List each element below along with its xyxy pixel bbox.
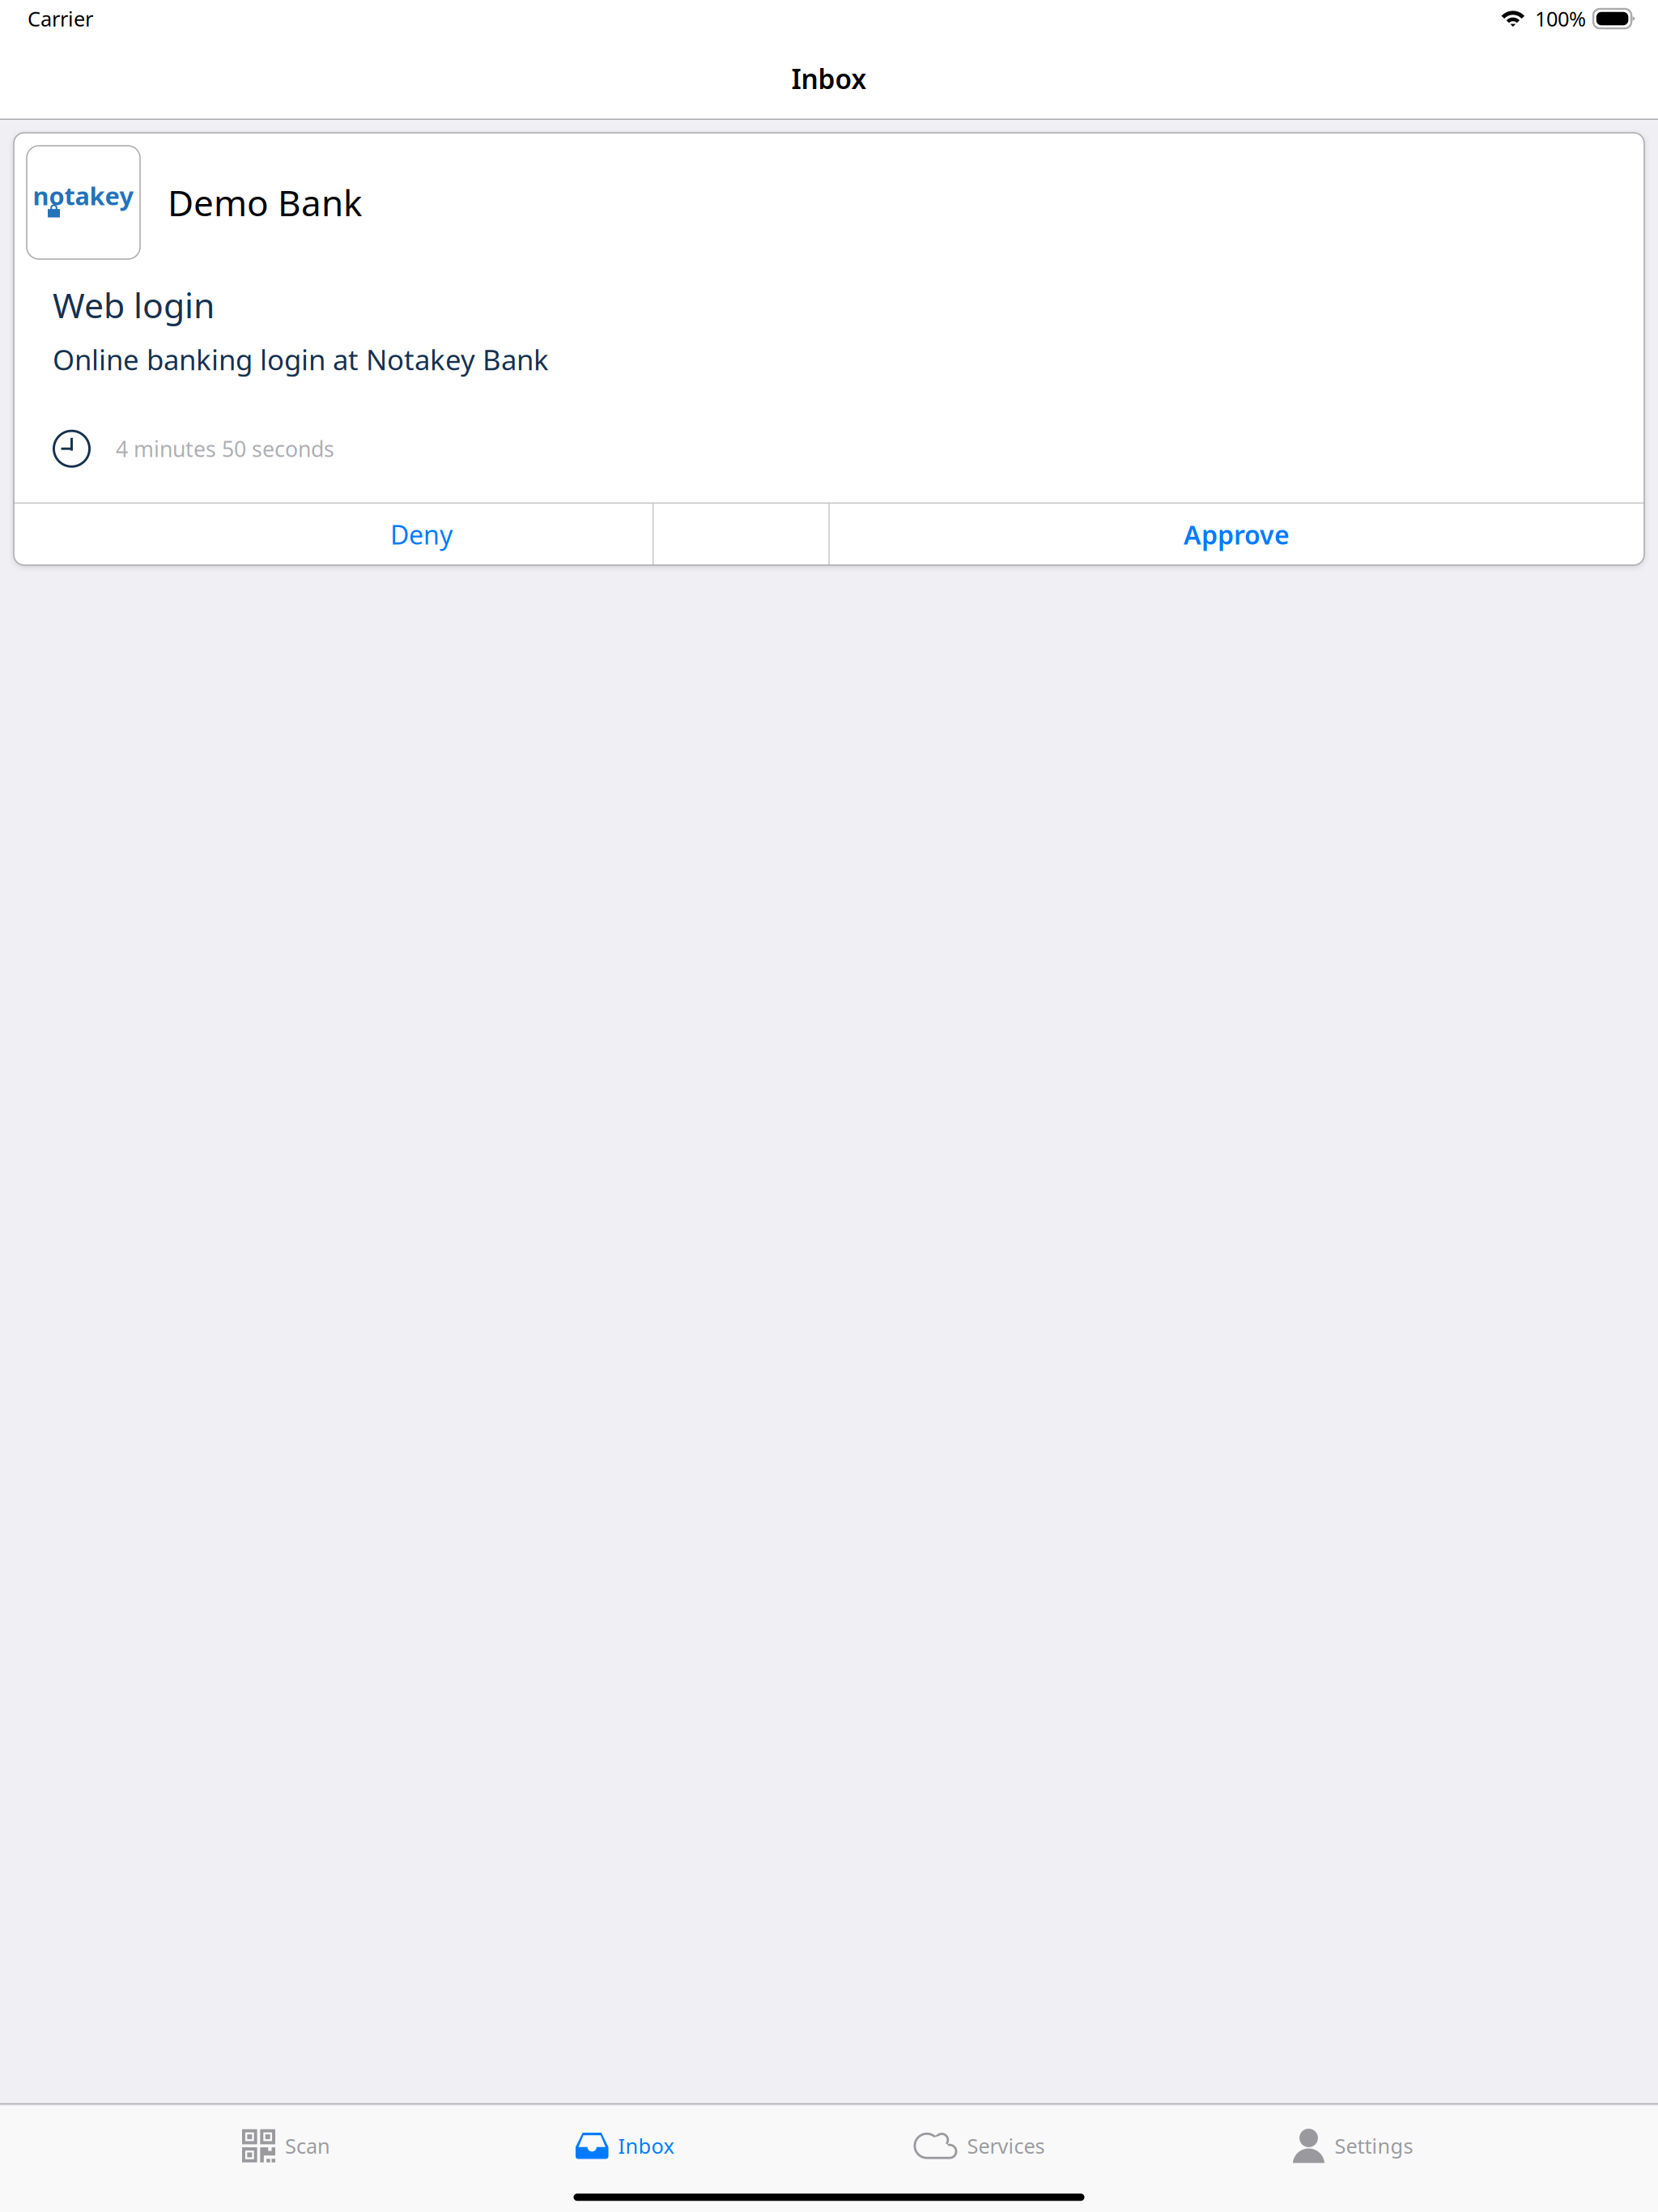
button[interactable]: Inbox [576,2132,674,2159]
button[interactable]: Services [914,2132,1045,2159]
staticText: Scan [285,2132,330,2159]
button[interactable]: Settings [1292,2129,1413,2163]
staticText: Carrier [28,5,93,32]
staticText: Settings [1335,2132,1413,2159]
staticText: Deny [390,517,453,552]
staticText: Approve [1184,517,1290,552]
staticText: Demo Bank [168,179,362,226]
staticText: notakey [33,179,134,212]
staticText: Web login [53,282,215,328]
staticText: Inbox [618,2132,674,2159]
button[interactable]: Deny [14,504,829,565]
staticText: 4 minutes 50 seconds [116,434,334,463]
staticText: Services [967,2132,1045,2159]
staticText: Inbox [791,61,867,97]
staticText: 100% [1535,5,1586,32]
staticText: Online banking login at Notakey Bank [53,341,549,378]
button[interactable]: Approve [829,504,1644,565]
button[interactable]: Scan [242,2129,330,2162]
